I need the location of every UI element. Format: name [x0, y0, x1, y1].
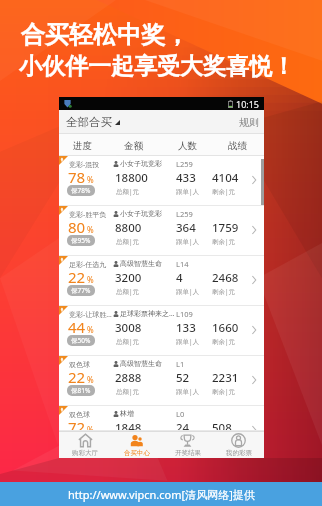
button[interactable]: 竞彩-让球胜…	[59, 306, 264, 356]
staticText: %	[87, 174, 94, 185]
staticText: 合买中心	[124, 449, 150, 457]
staticText: %	[87, 324, 94, 335]
staticText: 高级智慧生命	[120, 359, 162, 368]
staticText: 4104	[212, 170, 239, 186]
button[interactable]: 双色球	[59, 406, 264, 431]
staticText: 跟单|人	[176, 187, 200, 196]
staticText: 足彩-任选九	[69, 260, 114, 270]
staticText: L14	[176, 259, 189, 269]
staticText: %	[87, 224, 94, 235]
button[interactable]: 全部合买	[66, 110, 120, 134]
staticText: http://www.vipcn.com[清风网络]提供	[68, 487, 255, 502]
staticText: 24	[176, 420, 190, 436]
staticText: 22	[68, 367, 86, 387]
staticText: 总额|元	[116, 287, 140, 296]
staticText: 双色球	[69, 360, 114, 369]
staticText: 战绩	[228, 140, 247, 152]
staticText: 1660	[212, 320, 239, 336]
staticText: 22	[68, 267, 86, 287]
button[interactable]: 竞彩-混投	[59, 156, 264, 206]
staticText: L1	[176, 359, 185, 369]
staticText: 跟单|人	[176, 437, 200, 446]
staticText: 保78%	[71, 186, 91, 195]
staticText: L259	[176, 159, 193, 169]
button[interactable]: 双色球	[59, 356, 264, 406]
staticText: 小女子玩竞彩	[120, 159, 162, 168]
staticText: 高级智慧生命	[120, 259, 162, 268]
staticText: 364	[176, 220, 196, 236]
staticText: 3008	[115, 320, 142, 336]
staticText: 总额|元	[116, 237, 140, 246]
staticText: 4	[176, 270, 183, 286]
staticText: 1759	[212, 220, 239, 236]
staticText: 8800	[115, 220, 142, 236]
staticText: 购彩大厅	[72, 449, 98, 457]
staticText: 2888	[115, 370, 142, 386]
staticText: 1848	[115, 420, 142, 436]
staticText: 总额|元	[116, 387, 140, 396]
staticText: 433	[176, 170, 196, 186]
staticText: 剩余|元	[212, 187, 236, 196]
staticText: 林增	[120, 409, 134, 418]
staticText: 总额|元	[116, 437, 140, 446]
staticText: %	[87, 274, 94, 285]
button[interactable]: Group buy center	[111, 431, 162, 458]
staticText: %	[87, 374, 94, 385]
staticText: 跟单|人	[176, 237, 200, 246]
staticText: L0	[176, 409, 185, 419]
button[interactable]: My tickets	[213, 431, 264, 458]
staticText: 52	[176, 370, 190, 386]
staticText: 10:15	[236, 98, 260, 110]
button[interactable]: 竞彩-胜平负	[59, 206, 264, 256]
staticText: 剩余|元	[212, 387, 236, 396]
staticText: 规则	[239, 116, 259, 129]
staticText: L259	[176, 209, 193, 219]
staticText: 保81%	[71, 386, 91, 395]
staticText: 剩余|元	[212, 237, 236, 246]
staticText: 78	[68, 167, 86, 187]
staticText: 2468	[212, 270, 239, 286]
staticText: 44	[68, 317, 86, 337]
staticText: 保95%	[71, 236, 91, 245]
staticText: 跟单|人	[176, 287, 200, 296]
button[interactable]: Lottery hall	[59, 431, 111, 458]
staticText: 总额|元	[116, 337, 140, 346]
staticText: 小女子玩竞彩	[120, 209, 162, 218]
button[interactable]: 足彩-任选九	[59, 256, 264, 306]
staticText: 我的彩票	[226, 449, 252, 457]
staticText: 足球彩票神来之…	[120, 309, 175, 319]
staticText: L109	[176, 309, 193, 319]
staticText: 全部合买	[66, 115, 112, 129]
staticText: 跟单|人	[176, 387, 200, 396]
staticText: 剩余|元	[212, 337, 236, 346]
staticText: 开奖结果	[175, 449, 201, 457]
staticText: 保50%	[71, 336, 91, 345]
staticText: 80	[68, 217, 86, 237]
staticText: 总额|元	[116, 187, 140, 196]
staticText: 2231	[212, 370, 239, 386]
staticText: 双色球	[69, 410, 114, 419]
staticText: 3200	[115, 270, 142, 286]
staticText: 保60%	[71, 436, 91, 445]
button[interactable]: 规则	[234, 110, 264, 134]
staticText: 保77%	[71, 286, 91, 295]
staticText: 竞彩-胜平负	[69, 210, 114, 220]
staticText: 合买轻松中奖，	[21, 20, 189, 50]
staticText: 18800	[115, 170, 148, 186]
staticText: 133	[176, 320, 196, 336]
staticText: 金额	[124, 140, 143, 152]
staticText: 剩余|元	[212, 437, 236, 446]
staticText: 小伙伴一起享受大奖喜悦！	[19, 52, 295, 81]
staticText: 进度	[73, 140, 92, 152]
staticText: 508	[212, 420, 232, 436]
button[interactable]: Results	[162, 431, 213, 458]
staticText: 竞彩-混投	[69, 160, 114, 170]
staticText: 72	[68, 417, 86, 437]
staticText: 竞彩-让球胜…	[69, 310, 114, 320]
staticText: 剩余|元	[212, 287, 236, 296]
staticText: 人数	[178, 140, 197, 152]
staticText: %	[87, 424, 94, 435]
staticText: 跟单|人	[176, 337, 200, 346]
